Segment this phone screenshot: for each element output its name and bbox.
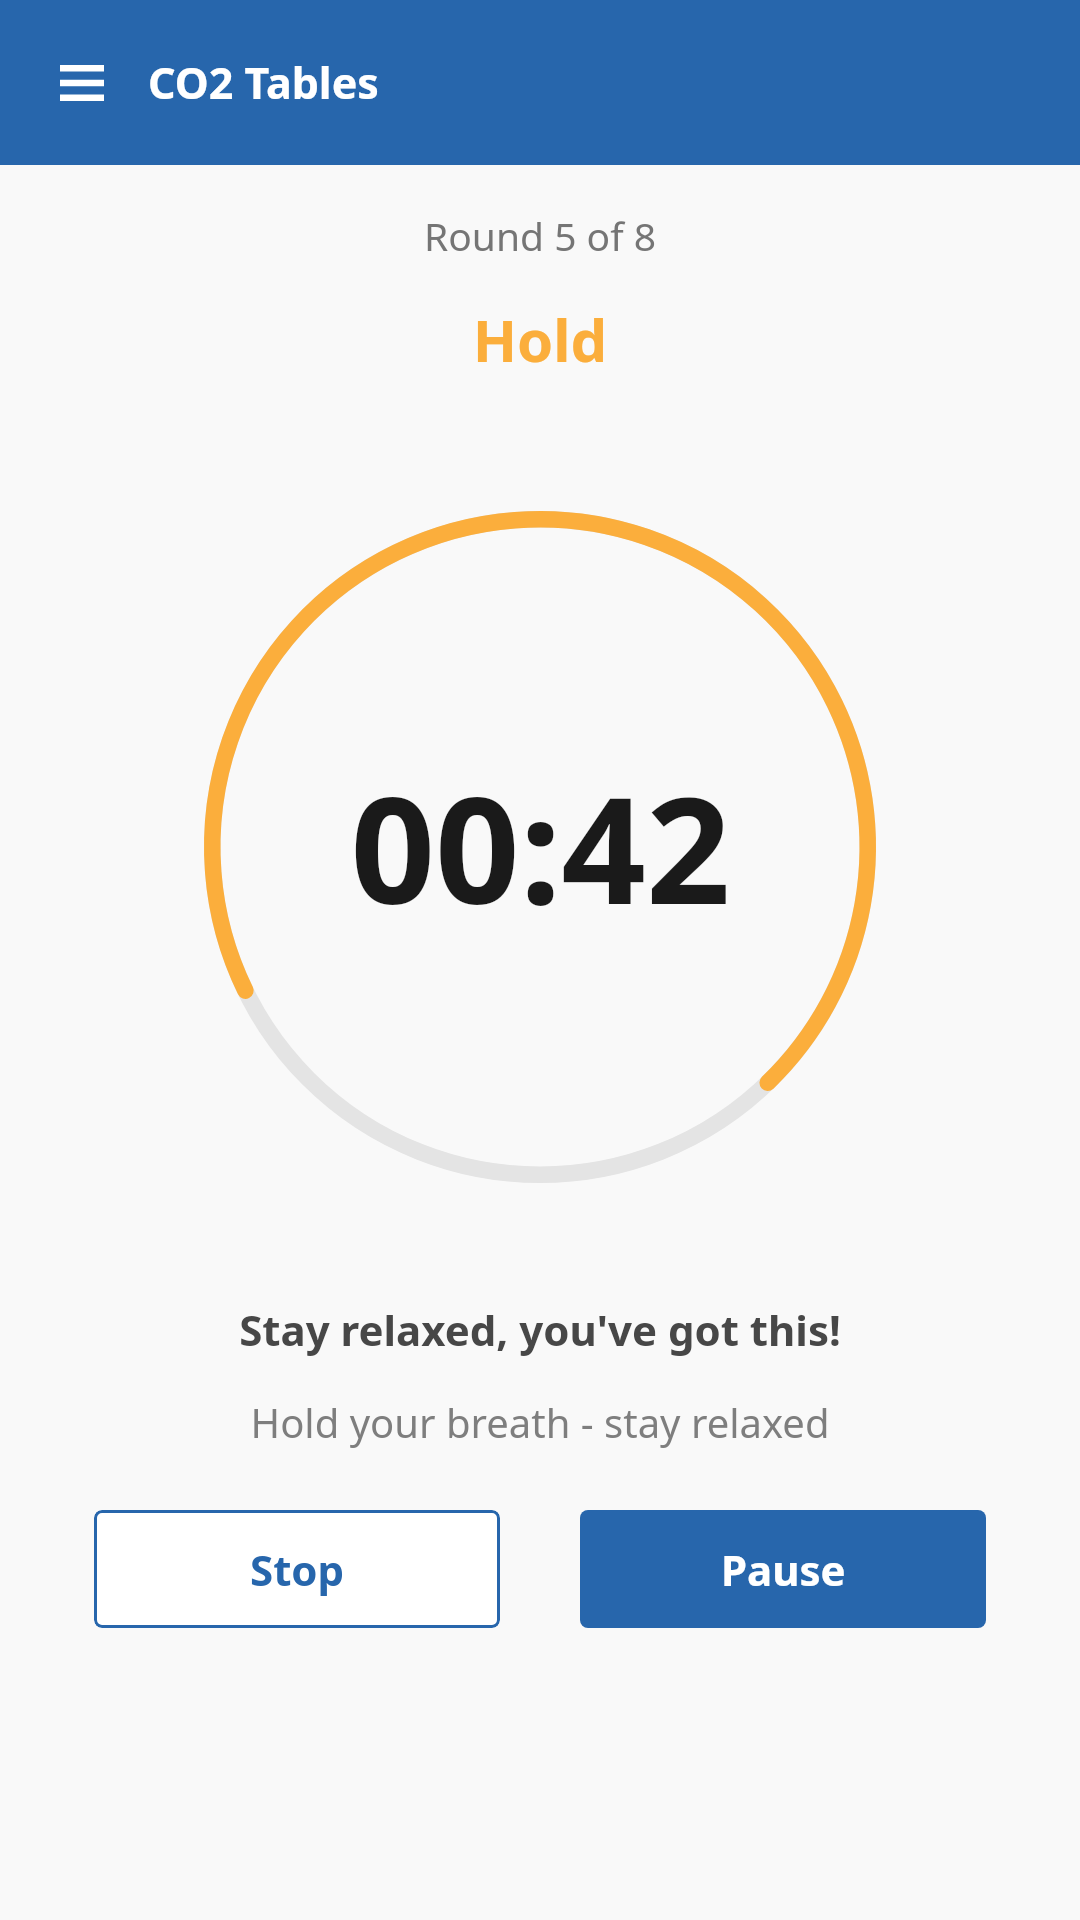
staticText: Hold (0, 300, 1080, 379)
staticText: Pause (721, 1541, 846, 1598)
staticText: 00:42 (350, 746, 731, 948)
staticText: Round 5 of 8 (0, 209, 1080, 262)
staticText: Hold your breath - stay relaxed (0, 1395, 1080, 1449)
button[interactable]: Open navigation menu (40, 41, 124, 125)
button[interactable]: Stop (94, 1510, 500, 1628)
staticText: Stop (250, 1541, 345, 1598)
staticText: CO2 Tables (148, 53, 379, 112)
staticText: Stay relaxed, you've got this! (0, 1301, 1080, 1358)
button[interactable]: Pause (580, 1510, 986, 1628)
